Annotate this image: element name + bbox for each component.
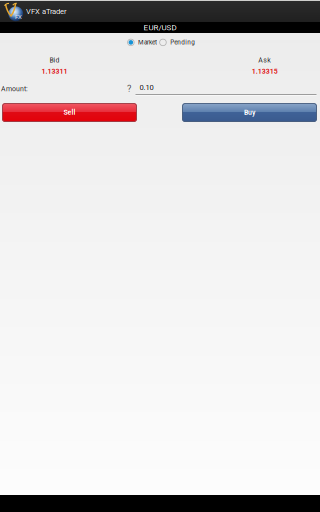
staticText: VFX aTrader	[26, 7, 67, 16]
staticText: Sell	[63, 108, 75, 116]
staticText: EUR/USD	[143, 23, 176, 32]
button[interactable]: EUR/USD	[0, 22, 320, 33]
staticText: ?	[127, 83, 131, 94]
button[interactable]: Pending	[158, 37, 196, 48]
staticText: Buy	[244, 108, 255, 116]
staticText: Ask	[258, 56, 271, 64]
staticText: 1.13311	[41, 67, 67, 75]
button[interactable]: Amount help	[124, 80, 134, 97]
button[interactable]: Buy	[182, 103, 317, 122]
staticText: Bid	[49, 56, 59, 64]
staticText: Market	[138, 39, 157, 46]
staticText: Pending	[170, 39, 195, 46]
staticText: 0.10	[139, 83, 153, 92]
staticText: 1.13315	[252, 67, 278, 75]
staticText: FX	[15, 13, 22, 21]
staticText: Amount:	[1, 85, 28, 93]
button[interactable]: Sell	[2, 103, 137, 122]
button[interactable]: Market	[126, 37, 158, 48]
button[interactable]: Amount 0.10	[135, 82, 316, 96]
